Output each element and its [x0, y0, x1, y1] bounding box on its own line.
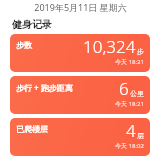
- staticText: 已爬楼层: [16, 124, 48, 134]
- button[interactable]: 步行 + 跑步距离: [10, 76, 150, 114]
- staticText: 公里: [130, 89, 144, 98]
- button[interactable]: 步数: [10, 34, 150, 72]
- staticText: 今天 18:02: [115, 142, 144, 150]
- staticText: 今天 18:21: [115, 58, 144, 66]
- staticText: 步: [137, 47, 144, 56]
- staticText: 2019年5月11日 星期六: [34, 1, 127, 13]
- staticText: 6: [119, 77, 129, 100]
- button[interactable]: 已爬楼层: [10, 118, 150, 156]
- staticText: 层: [137, 131, 144, 140]
- staticText: 健身记录: [12, 18, 52, 31]
- staticText: 今天 18:21: [115, 100, 144, 108]
- staticText: 10,324: [83, 35, 136, 58]
- staticText: 步数: [16, 40, 32, 50]
- staticText: 4: [126, 119, 136, 142]
- staticText: 步行 + 跑步距离: [16, 82, 73, 93]
